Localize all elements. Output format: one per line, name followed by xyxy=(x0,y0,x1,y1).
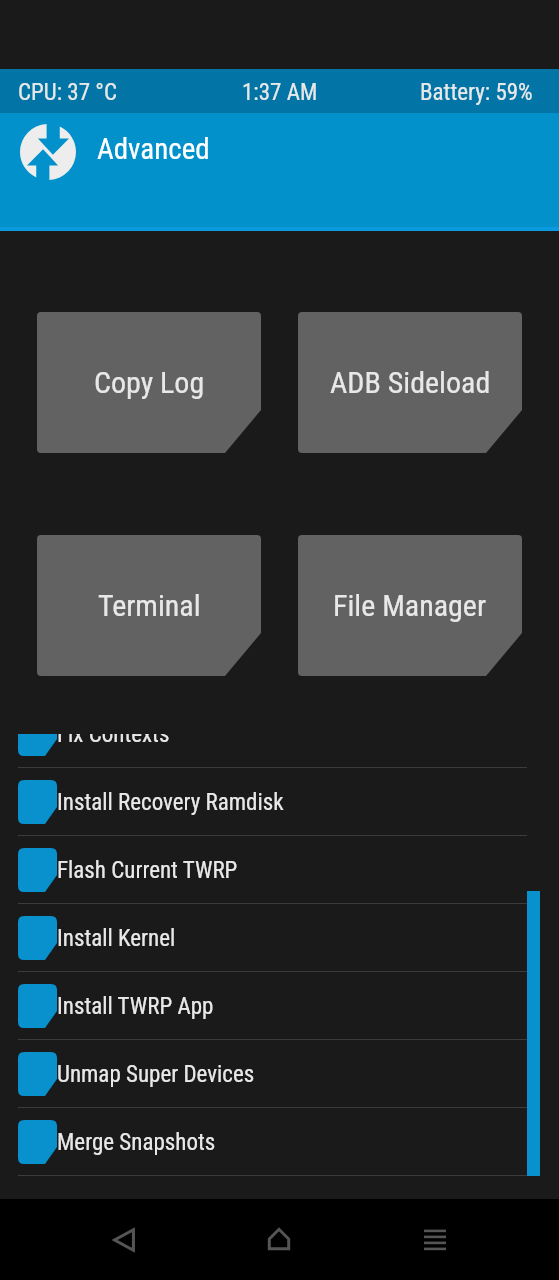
button[interactable]: Install Recovery Ramdisk xyxy=(0,768,559,836)
button[interactable]: Install TWRP App xyxy=(0,972,559,1040)
button[interactable]: Flash Current TWRP xyxy=(0,836,559,904)
button[interactable]: Home xyxy=(243,1203,315,1275)
button[interactable]: Install Kernel xyxy=(0,904,559,972)
button[interactable]: Terminal xyxy=(37,535,261,676)
button[interactable]: Fix Contexts xyxy=(0,734,559,768)
staticText: Copy Log xyxy=(94,365,205,400)
button[interactable]: File Manager xyxy=(298,535,522,676)
staticText: Merge Snapshots xyxy=(57,1129,216,1156)
button[interactable]: Copy Log xyxy=(37,312,261,453)
staticText: CPU: 37 °C xyxy=(18,79,117,106)
staticText: Fix Contexts xyxy=(57,734,170,748)
staticText: File Manager xyxy=(333,588,487,623)
button[interactable]: Unmap Super Devices xyxy=(0,1040,559,1108)
staticText: Battery: 59% xyxy=(420,79,533,106)
button[interactable]: ADB Sideload xyxy=(298,312,522,453)
staticText: Terminal xyxy=(98,588,201,623)
button[interactable]: Back xyxy=(88,1204,160,1276)
staticText: 1:37 AM xyxy=(242,79,318,106)
staticText: Install Kernel xyxy=(57,925,176,952)
staticText: ADB Sideload xyxy=(330,365,491,400)
staticText: Advanced xyxy=(97,132,210,166)
staticText: Install TWRP App xyxy=(57,993,214,1020)
staticText: Flash Current TWRP xyxy=(57,857,238,884)
button[interactable]: Merge Snapshots xyxy=(0,1108,559,1176)
button[interactable]: Menu xyxy=(399,1204,471,1276)
staticText: Unmap Super Devices xyxy=(57,1061,255,1088)
staticText: Install Recovery Ramdisk xyxy=(57,789,284,816)
